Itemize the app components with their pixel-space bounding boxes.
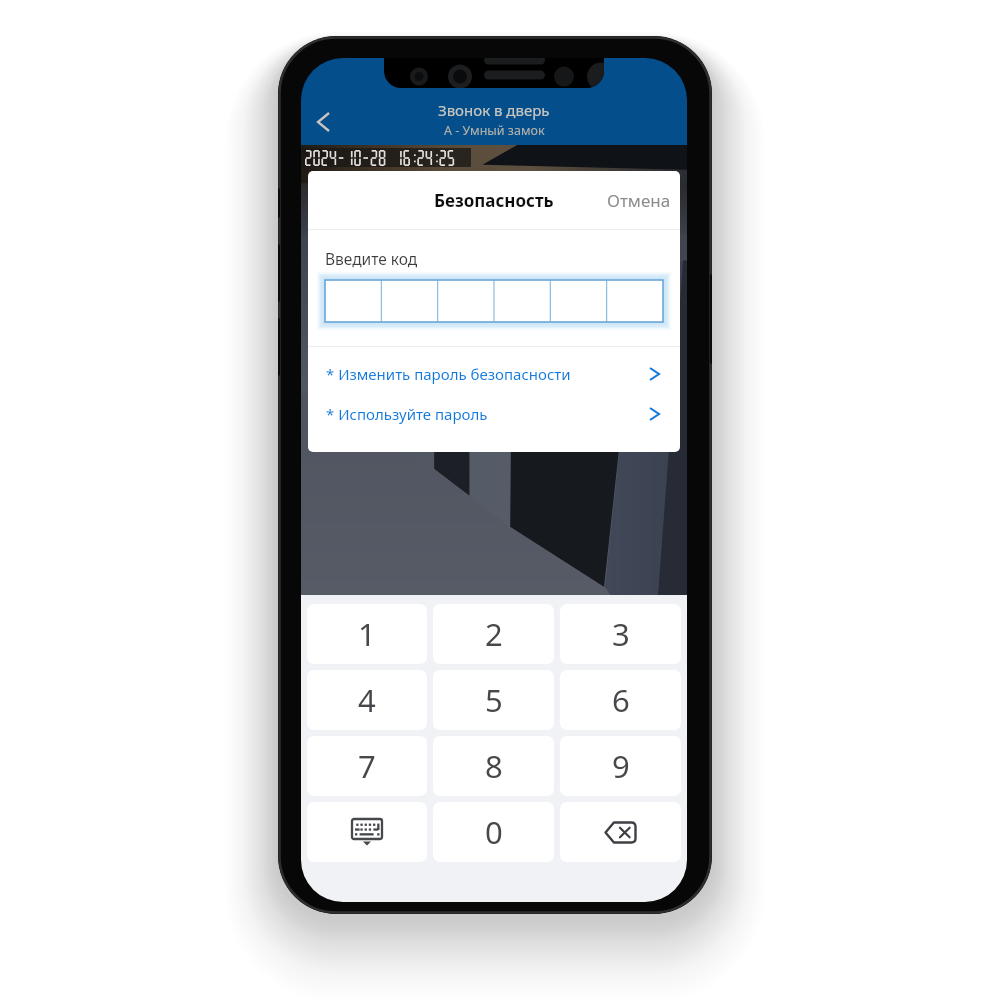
staticText: 0	[485, 811, 503, 853]
staticText: Введите код	[325, 248, 418, 269]
other: Hide keyboard	[351, 818, 383, 846]
staticText: 1	[358, 613, 376, 655]
staticText: Отмена	[607, 189, 671, 212]
other: Delete	[604, 821, 637, 844]
staticText: Звонок в дверь	[438, 100, 550, 120]
button[interactable]: Back	[301, 100, 345, 144]
button[interactable]: Отмена	[593, 177, 680, 224]
staticText: 5	[485, 679, 503, 721]
button[interactable]: Hide keyboard	[307, 802, 427, 862]
button[interactable]: 3	[560, 604, 681, 664]
staticText: 3	[612, 613, 630, 655]
button[interactable]: 1	[307, 604, 427, 664]
button[interactable]: * Используйте пароль	[308, 394, 680, 434]
staticText: Безопасность	[434, 189, 554, 212]
button[interactable]: 4	[307, 670, 427, 730]
button[interactable]: 0	[433, 802, 554, 862]
staticText: 6	[612, 679, 630, 721]
button[interactable]: * Изменить пароль безопасности	[308, 354, 680, 394]
button[interactable]: 5	[433, 670, 554, 730]
button[interactable]: 9	[560, 736, 681, 796]
button[interactable]: 7	[307, 736, 427, 796]
button[interactable]: 8	[433, 736, 554, 796]
button[interactable]: Delete	[560, 802, 681, 862]
staticText: * Изменить пароль безопасности	[326, 364, 571, 384]
button[interactable]: 2	[433, 604, 554, 664]
staticText: 4	[358, 679, 376, 721]
staticText: 2	[485, 613, 503, 655]
button[interactable]: 6	[560, 670, 681, 730]
staticText: A - Умный замок	[444, 122, 545, 139]
staticText: 8	[485, 745, 503, 787]
staticText: 9	[612, 745, 630, 787]
staticText: * Используйте пароль	[326, 404, 488, 424]
staticText: 7	[358, 745, 376, 787]
